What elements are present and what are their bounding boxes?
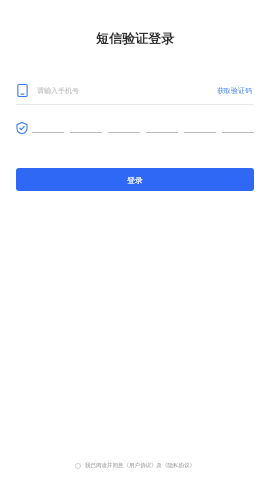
button[interactable]: 登录 bbox=[16, 168, 254, 191]
other: Phone number bbox=[16, 84, 29, 97]
staticText: 短信验证登录 bbox=[96, 30, 174, 46]
staticText: 获取验证码 bbox=[217, 86, 252, 95]
staticText: 请输入手机号 bbox=[37, 86, 215, 95]
staticText: 我已阅读并同意《用户协议》及《隐私协议》 bbox=[85, 462, 195, 469]
staticText: 登录 bbox=[127, 175, 143, 185]
button[interactable]: 获取验证码 bbox=[215, 84, 254, 97]
button[interactable] bbox=[32, 119, 254, 137]
button[interactable]: 我已阅读并同意《用户协议》及《隐私协议》 bbox=[71, 459, 199, 472]
other: Verification code bbox=[16, 122, 28, 134]
